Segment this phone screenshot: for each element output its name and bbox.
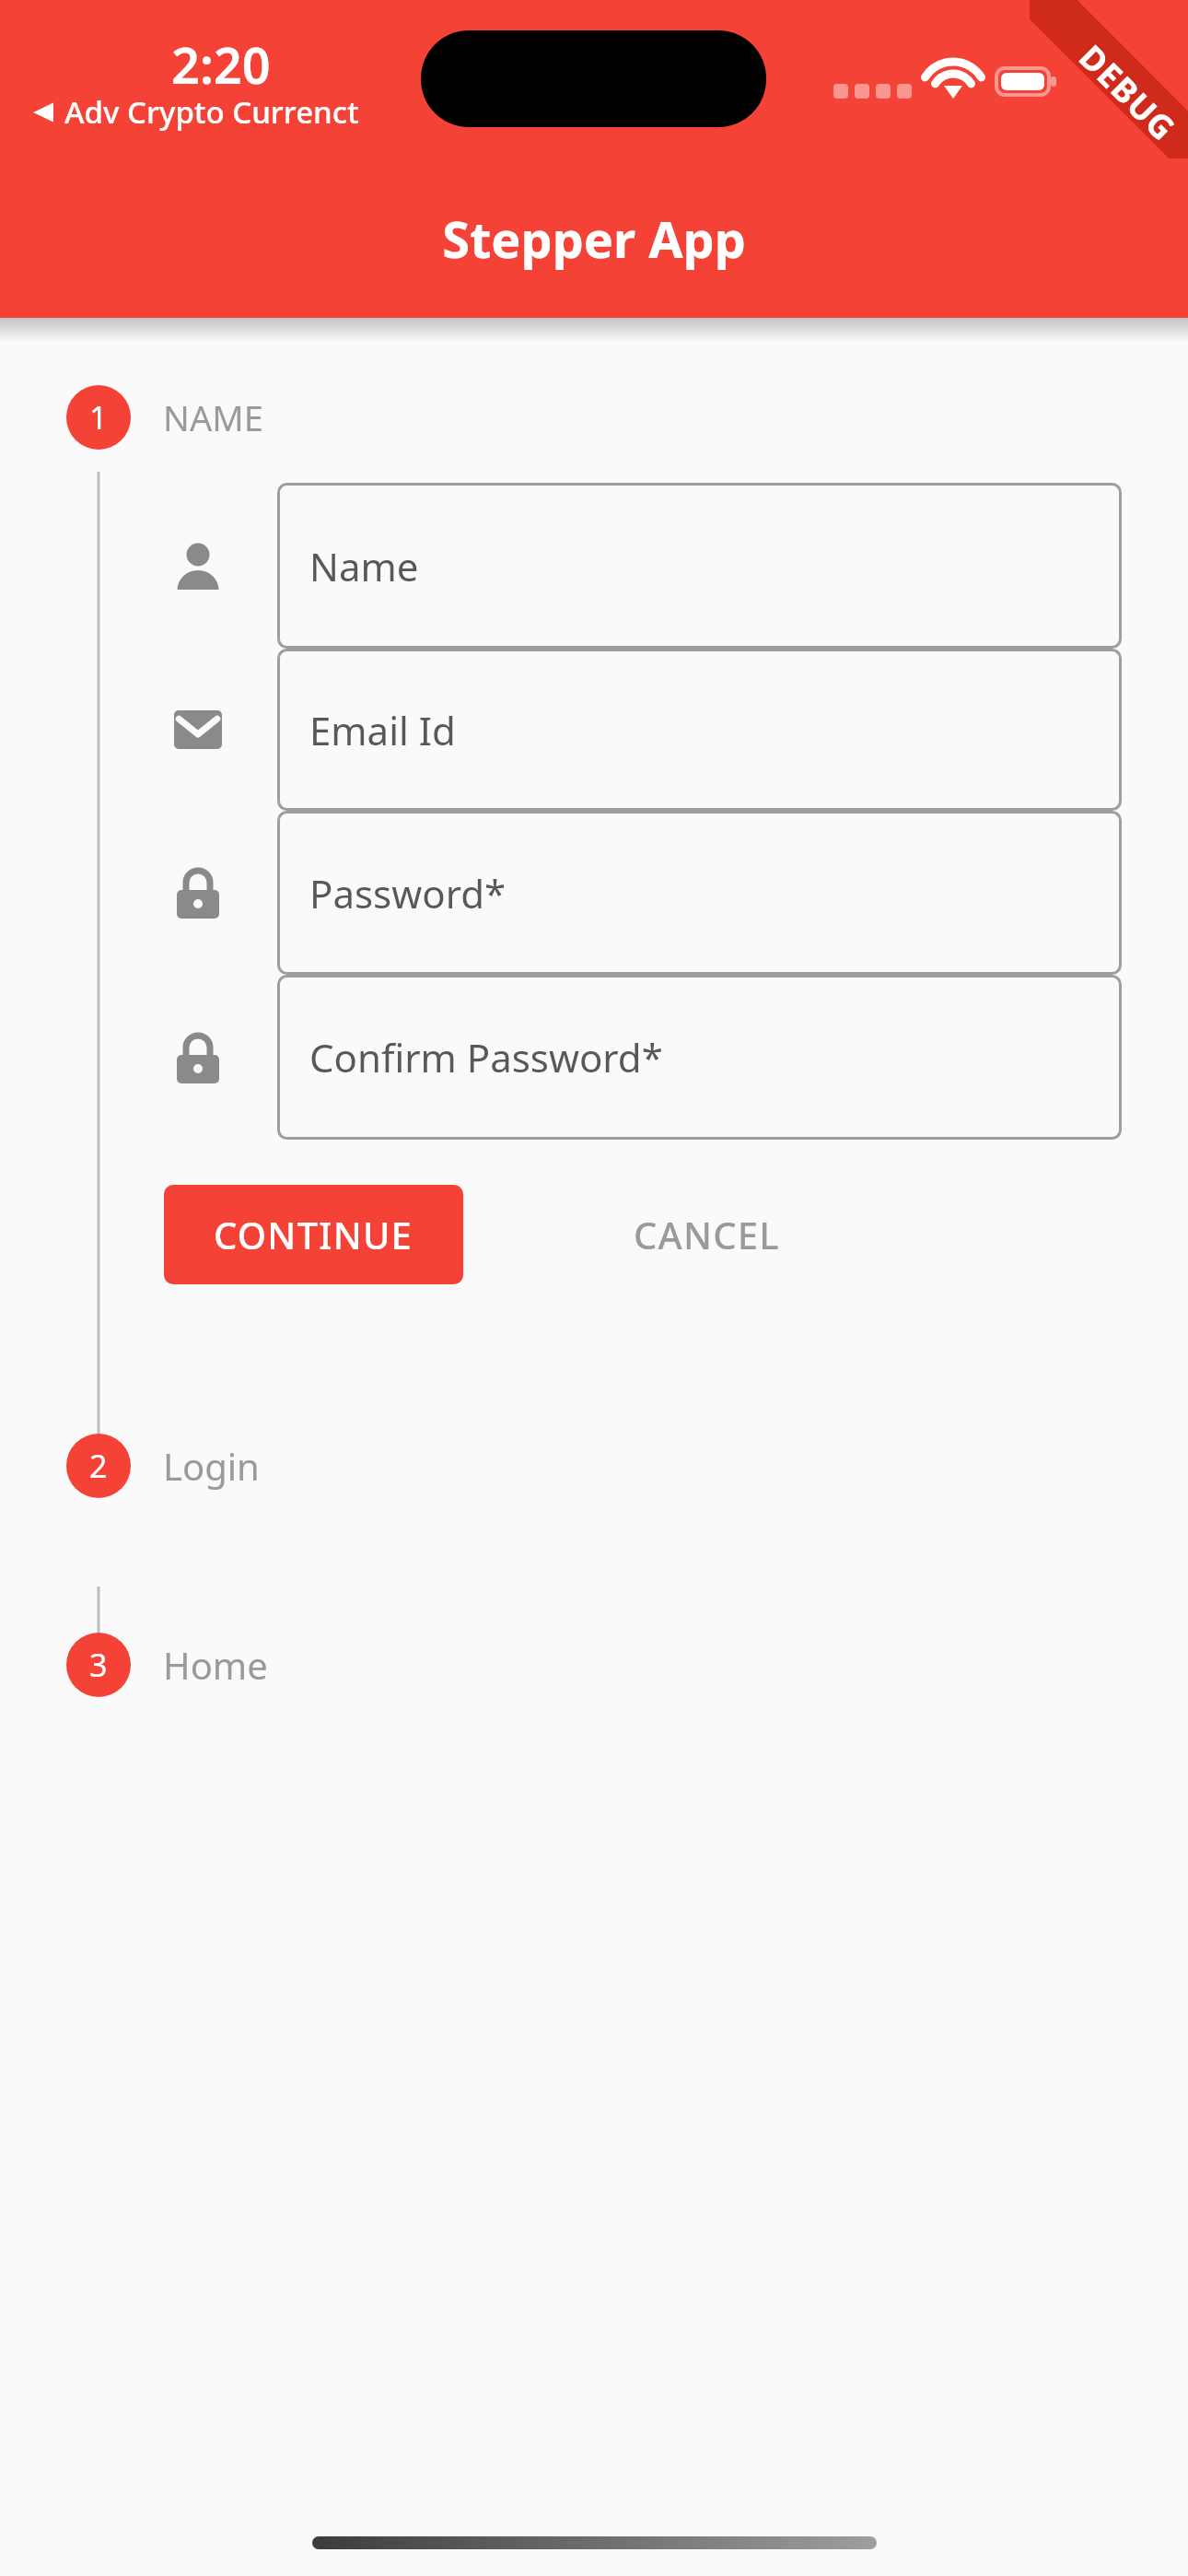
staticText: Name — [309, 540, 419, 592]
other: Back — [33, 100, 53, 124]
button[interactable]: Confirm Password* — [277, 975, 1122, 1140]
staticText: 1 — [89, 396, 108, 439]
other: Password — [177, 1032, 219, 1083]
staticText: Home — [163, 1640, 268, 1690]
staticText: NAME — [163, 393, 263, 441]
staticText: 3 — [89, 1644, 108, 1686]
button[interactable]: 1 — [0, 385, 1188, 450]
button[interactable]: 3 — [0, 1633, 1188, 1697]
staticText: 2:20 — [171, 30, 271, 99]
button[interactable]: Name — [277, 483, 1122, 649]
staticText: CANCEL — [634, 1210, 780, 1259]
staticText: Email Id — [309, 704, 456, 756]
button[interactable]: 2 — [0, 1434, 1188, 1498]
staticText: CONTINUE — [214, 1210, 413, 1259]
staticText: 2 — [89, 1445, 108, 1487]
button[interactable]: CONTINUE — [164, 1185, 463, 1284]
staticText: Stepper App — [442, 205, 746, 273]
other: Password — [177, 867, 219, 919]
button[interactable]: CANCEL — [599, 1185, 815, 1284]
button[interactable]: Password* — [277, 811, 1122, 975]
button[interactable]: Email Id — [277, 649, 1122, 811]
staticText: Confirm Password* — [309, 1031, 663, 1083]
other: Person — [174, 542, 222, 590]
other: Email — [174, 710, 222, 749]
staticText: Adv Crypto Currenct — [64, 91, 359, 133]
button[interactable]: Back — [33, 91, 359, 133]
staticText: Password* — [309, 867, 507, 919]
staticText: Login — [163, 1441, 260, 1491]
staticText: DEBUG — [1070, 35, 1186, 151]
